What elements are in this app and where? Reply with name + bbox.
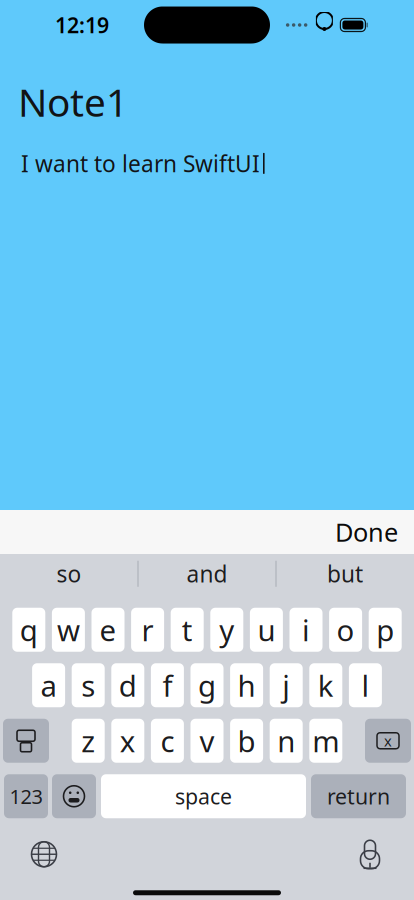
staticText: o <box>337 610 355 649</box>
staticText: u <box>257 610 275 649</box>
button[interactable]: u <box>250 608 283 652</box>
staticText: q <box>20 610 38 649</box>
staticText: a <box>41 666 57 705</box>
staticText: n <box>277 721 295 760</box>
button[interactable]: v <box>190 719 223 763</box>
button[interactable]: 123 <box>4 774 48 818</box>
staticText: 123 <box>9 783 42 810</box>
staticText: i <box>302 610 310 649</box>
button[interactable]: a <box>32 663 65 707</box>
button[interactable]: Next keyboard <box>22 834 66 874</box>
staticText: but <box>327 559 363 589</box>
staticText: c <box>160 721 174 760</box>
button[interactable]: t <box>171 608 204 652</box>
staticText: t <box>182 610 193 649</box>
staticText: j <box>282 666 290 705</box>
button[interactable]: but <box>276 550 413 598</box>
button[interactable]: y <box>210 608 243 652</box>
button[interactable]: r <box>131 608 164 652</box>
staticText: g <box>198 666 216 705</box>
staticText: r <box>142 610 154 649</box>
staticText: x <box>120 721 136 760</box>
staticText: Done <box>335 515 398 549</box>
button[interactable]: s <box>72 663 105 707</box>
button[interactable]: n <box>270 719 303 763</box>
staticText: l <box>361 666 369 705</box>
button[interactable]: i <box>289 608 322 652</box>
staticText: x <box>384 731 392 750</box>
staticText: e <box>99 610 116 649</box>
button[interactable]: p <box>369 608 402 652</box>
button[interactable]: c <box>151 719 184 763</box>
staticText: z <box>81 721 95 760</box>
button[interactable]: Done <box>325 507 408 557</box>
button[interactable]: g <box>190 663 223 707</box>
staticText: I want to learn SwiftUI <box>21 148 260 178</box>
staticText: v <box>199 721 214 760</box>
staticText: return <box>327 782 390 810</box>
staticText: y <box>219 610 234 649</box>
button[interactable]: l <box>349 663 382 707</box>
button[interactable]: h <box>230 663 263 707</box>
button[interactable]: Shift <box>3 719 49 763</box>
staticText: s <box>81 666 95 705</box>
button[interactable]: b <box>230 719 263 763</box>
staticText: h <box>238 666 256 705</box>
button[interactable]: d <box>111 663 144 707</box>
button[interactable]: space <box>101 774 306 818</box>
staticText: m <box>312 721 339 760</box>
button[interactable]: e <box>91 608 124 652</box>
button[interactable]: o <box>329 608 362 652</box>
staticText: f <box>162 666 172 705</box>
staticText: p <box>376 610 394 649</box>
button[interactable]: w <box>52 608 85 652</box>
staticText: d <box>119 666 137 705</box>
button[interactable]: z <box>72 719 105 763</box>
staticText: 12:19 <box>55 11 109 39</box>
button[interactable]: q <box>12 608 45 652</box>
button[interactable]: x <box>111 719 144 763</box>
button[interactable]: j <box>270 663 303 707</box>
button[interactable]: m <box>309 719 342 763</box>
staticText: space <box>175 782 232 810</box>
staticText: k <box>318 666 334 705</box>
button[interactable]: f <box>151 663 184 707</box>
button[interactable]: Dictation <box>348 834 392 874</box>
staticText: b <box>238 721 256 760</box>
staticText: w <box>57 610 80 649</box>
button[interactable]: return <box>311 774 406 818</box>
staticText: and <box>186 559 227 589</box>
button[interactable]: Emoji <box>52 774 96 818</box>
staticText: so <box>56 559 81 589</box>
button[interactable]: k <box>309 663 342 707</box>
staticText: Note1 <box>18 76 128 127</box>
button[interactable]: Delete <box>365 719 411 763</box>
button[interactable]: so <box>0 550 137 598</box>
button[interactable]: and <box>138 550 275 598</box>
